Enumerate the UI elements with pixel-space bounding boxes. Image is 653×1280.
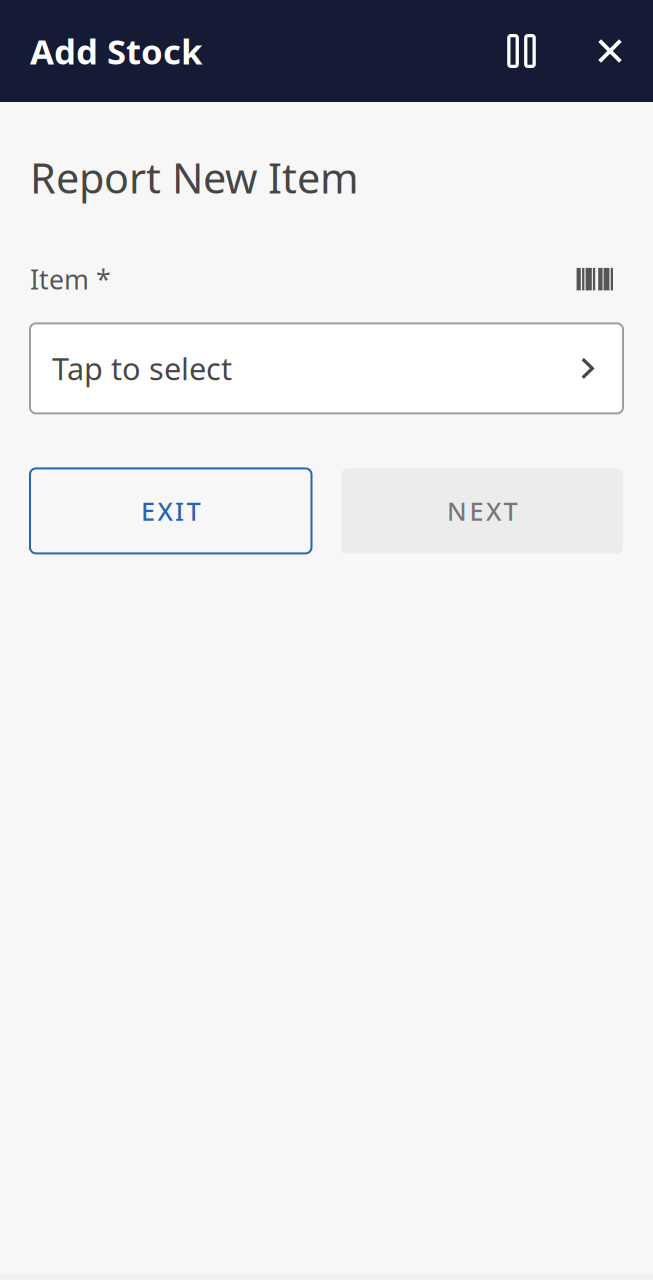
button[interactable]: NEXT <box>341 468 623 553</box>
button[interactable]: Split view <box>470 11 573 91</box>
staticText: EXIT <box>141 494 200 528</box>
staticText: Item * <box>30 261 111 297</box>
staticText: NEXT <box>447 494 517 528</box>
button[interactable]: Scan barcode <box>565 260 623 298</box>
button[interactable]: Tap to select <box>30 323 623 413</box>
button[interactable]: Close <box>573 11 647 91</box>
staticText: Report New Item <box>30 150 359 205</box>
staticText: Add Stock <box>30 28 202 74</box>
button[interactable]: EXIT <box>30 468 311 553</box>
staticText: Tap to select <box>52 348 232 389</box>
